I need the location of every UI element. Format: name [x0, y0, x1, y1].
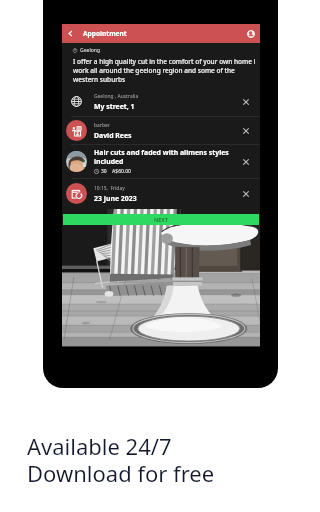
staticText: David Rees [94, 131, 132, 140]
staticText: Geelong , Australia [94, 93, 139, 100]
staticText: 30 [101, 168, 107, 175]
button[interactable]: Remove [240, 125, 252, 137]
button[interactable]: Remove [240, 156, 252, 168]
button[interactable]: NEXT [63, 214, 259, 225]
staticText: Hair cuts and faded with allmens styles … [94, 148, 235, 166]
staticText: 23 June 2023 [94, 194, 137, 203]
button[interactable]: Hair cuts and faded with allmens styles … [62, 145, 260, 178]
button[interactable]: Geelong , Australia [62, 87, 260, 116]
button[interactable]: Back [62, 24, 79, 43]
staticText: Available 24/7 [27, 431, 172, 461]
button[interactable]: Remove [240, 96, 252, 108]
button[interactable]: Remove [240, 188, 252, 200]
button[interactable]: Profile [247, 30, 255, 38]
staticText: Download for free [27, 458, 215, 488]
staticText: barber [94, 122, 110, 129]
button[interactable]: 10:15, Friday [62, 179, 260, 208]
staticText: Appointment [83, 29, 127, 38]
staticText: Geelong [80, 47, 101, 54]
staticText: 10:15, Friday [94, 185, 125, 192]
staticText: My street, 1 [94, 102, 135, 111]
staticText: A$60.00 [112, 168, 131, 175]
button[interactable]: barber [62, 117, 260, 144]
staticText: NEXT [154, 216, 168, 223]
staticText: I offer a high quality cut in the comfor… [73, 57, 256, 84]
